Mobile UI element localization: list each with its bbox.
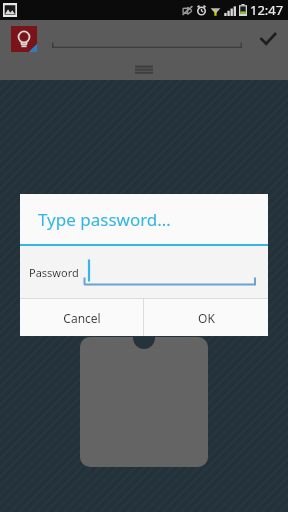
button[interactable]: Drag handle bbox=[0, 58, 288, 80]
other: App icon bbox=[11, 26, 37, 52]
button[interactable]: Done bbox=[248, 20, 288, 58]
staticText: Type password… bbox=[38, 208, 171, 231]
staticText: 12:47 bbox=[250, 1, 284, 19]
button[interactable]: Cancel bbox=[20, 299, 143, 336]
staticText: OK bbox=[198, 310, 215, 326]
staticText: Password bbox=[29, 265, 79, 280]
staticText: Cancel bbox=[63, 310, 101, 326]
button[interactable]: OK bbox=[144, 299, 268, 336]
